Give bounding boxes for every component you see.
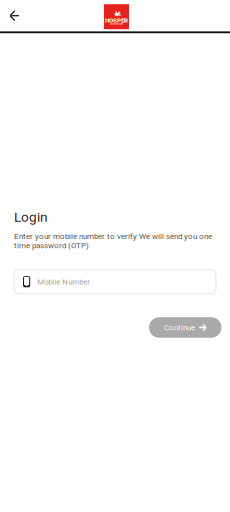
button[interactable]: Back	[3, 5, 25, 27]
staticText: Login	[14, 209, 48, 225]
staticText: Continue	[164, 323, 195, 332]
button[interactable]: Mobile Number	[14, 270, 216, 294]
staticText: HOSPER	[105, 17, 128, 24]
staticText: Mobile Number	[37, 277, 90, 286]
button[interactable]: Continue	[149, 317, 221, 338]
staticText: Enter your mobile number to verify We wi…	[14, 232, 212, 250]
